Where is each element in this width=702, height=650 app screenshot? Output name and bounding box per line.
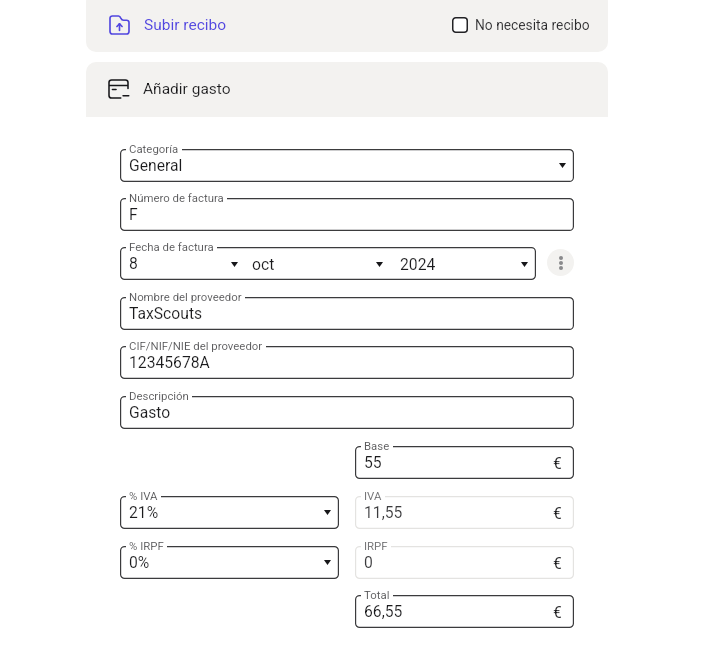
button[interactable]: Total [355,595,574,628]
staticText: Base [364,439,390,452]
button[interactable]: IRPF [355,546,574,579]
button[interactable]: % IRPF [120,546,339,579]
staticText: oct [252,255,275,273]
staticText: 0 [364,553,373,571]
staticText: IVA [364,489,382,502]
staticText: Total [364,588,390,601]
staticText: % IRPF [129,539,164,552]
staticText: Nombre del proveedor [129,290,242,303]
staticText: 0% [129,553,150,571]
staticText: 21% [129,503,159,521]
button[interactable]: Descripción [120,396,574,429]
staticText: F [129,205,138,223]
button[interactable]: No necesita recibo [452,17,590,33]
staticText: Número de factura [129,191,224,204]
staticText: Descripción [129,389,189,402]
staticText: 66,55 [364,602,403,620]
staticText: 12345678A [129,353,210,371]
staticText: 11,55 [364,503,403,521]
staticText: Añadir gasto [143,80,231,98]
button[interactable]: Más opciones [547,249,574,276]
staticText: € [553,504,562,522]
staticText: Gasto [129,403,171,421]
staticText: No necesita recibo [475,17,590,33]
staticText: Fecha de factura [129,240,214,253]
button[interactable]: % IVA [120,496,339,529]
button[interactable]: Base [355,446,574,479]
staticText: 55 [364,453,382,471]
staticText: CIF/NIF/NIE del proveedor [129,339,263,352]
staticText: € [553,454,562,472]
staticText: Subir recibo [144,16,227,34]
staticText: Categoría [129,142,179,155]
staticText: IRPF [364,539,388,552]
staticText: 2024 [400,255,436,273]
staticText: General [129,156,183,174]
button[interactable]: CIF/NIF/NIE del proveedor [120,346,574,379]
staticText: 8 [129,254,138,272]
button[interactable]: Subir recibo [110,14,227,32]
button[interactable]: Número de factura [120,198,574,231]
staticText: € [553,554,562,572]
button[interactable]: IVA [355,496,574,529]
button[interactable]: Categoría [120,149,574,182]
staticText: % IVA [129,489,158,502]
button[interactable]: Nombre del proveedor [120,297,574,330]
button[interactable]: Fecha de factura [120,247,536,280]
staticText: TaxScouts [129,304,203,322]
staticText: € [553,603,562,621]
